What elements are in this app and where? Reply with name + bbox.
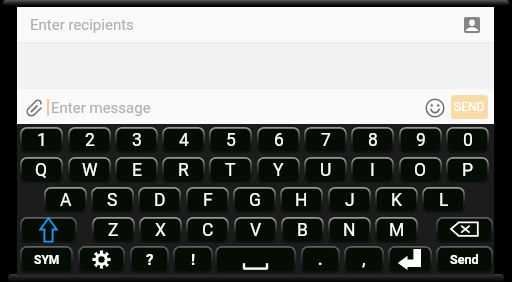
staticText: O	[414, 160, 427, 181]
button[interactable]: K	[375, 187, 418, 213]
staticText: D	[154, 190, 166, 211]
button[interactable]: P	[446, 157, 489, 183]
button[interactable]: Y	[257, 157, 300, 183]
staticText: X	[155, 220, 166, 241]
staticText: 4	[179, 130, 189, 151]
staticText: U	[320, 160, 332, 181]
staticText: 5	[226, 130, 236, 151]
button[interactable]: C	[186, 217, 229, 243]
button[interactable]: !	[173, 246, 213, 273]
button[interactable]: .	[301, 246, 340, 273]
button[interactable]: Q	[20, 157, 63, 183]
staticText: R	[178, 160, 189, 181]
button[interactable]: ,	[344, 246, 384, 273]
button[interactable]: Attach	[23, 98, 45, 120]
staticText: H	[295, 190, 308, 211]
staticText: B	[297, 220, 308, 241]
staticText: I	[370, 160, 375, 181]
button[interactable]: 9	[399, 127, 442, 153]
button[interactable]: T	[209, 157, 252, 183]
staticText: Send	[450, 252, 479, 267]
staticText: E	[132, 160, 142, 181]
button[interactable]: G	[233, 187, 276, 213]
button[interactable]: Space	[215, 246, 296, 273]
staticText: L	[439, 190, 449, 211]
staticText: Enter message	[51, 99, 151, 117]
button[interactable]: F	[186, 187, 229, 213]
button[interactable]: 3	[115, 127, 158, 153]
staticText: 8	[368, 130, 378, 151]
button[interactable]: 6	[257, 127, 300, 153]
staticText: 7	[321, 130, 331, 151]
staticText: K	[391, 190, 402, 211]
button[interactable]: 0	[446, 127, 489, 153]
staticText: SYM	[34, 253, 60, 267]
button[interactable]: 7	[304, 127, 347, 153]
staticText: P	[462, 160, 474, 181]
button[interactable]: Enter	[388, 246, 432, 273]
staticText: A	[60, 190, 72, 211]
button[interactable]: Z	[92, 217, 135, 243]
staticText: M	[389, 220, 405, 241]
staticText: V	[250, 220, 262, 241]
button[interactable]: Keyboard settings	[78, 246, 125, 273]
button[interactable]: R	[162, 157, 205, 183]
staticText: ?	[146, 251, 154, 269]
button[interactable]: 2	[68, 127, 111, 153]
staticText: J	[345, 190, 355, 211]
button[interactable]: SYM	[20, 246, 73, 273]
button[interactable]: M	[375, 217, 418, 243]
button[interactable]: 8	[351, 127, 394, 153]
staticText: G	[249, 190, 261, 211]
button[interactable]: N	[328, 217, 371, 243]
button[interactable]: Emoji	[425, 98, 445, 118]
button[interactable]: Send	[436, 246, 493, 273]
button[interactable]: D	[138, 187, 181, 213]
staticText: !	[191, 251, 196, 269]
button[interactable]: Backspace	[436, 217, 493, 243]
button[interactable]: L	[422, 187, 465, 213]
staticText: Q	[35, 160, 48, 181]
staticText: SEND	[454, 100, 485, 114]
button[interactable]: B	[281, 217, 324, 243]
button[interactable]: S	[91, 187, 134, 213]
staticText: Enter recipients	[30, 16, 134, 34]
button[interactable]: U	[304, 157, 347, 183]
button[interactable]: O	[399, 157, 442, 183]
staticText: 6	[274, 130, 284, 151]
staticText: 1	[37, 130, 47, 151]
staticText: F	[203, 190, 213, 211]
button[interactable]: E	[115, 157, 158, 183]
staticText: Z	[108, 220, 119, 241]
button[interactable]: I	[351, 157, 394, 183]
staticText: C	[202, 220, 214, 241]
button[interactable]: Choose contact	[461, 14, 482, 35]
staticText: 9	[416, 130, 426, 151]
staticText: 3	[132, 130, 142, 151]
staticText: .	[318, 251, 323, 269]
button[interactable]: 4	[162, 127, 205, 153]
staticText: W	[82, 160, 98, 181]
button[interactable]: J	[328, 187, 371, 213]
button[interactable]: 1	[20, 127, 63, 153]
staticText: N	[343, 220, 356, 241]
staticText: ,	[362, 251, 366, 269]
button[interactable]: Shift	[20, 217, 77, 243]
button[interactable]: ?	[130, 246, 169, 273]
button[interactable]: W	[68, 157, 111, 183]
button[interactable]: Enter recipients	[17, 7, 457, 42]
staticText: 0	[463, 130, 473, 151]
staticText: Y	[273, 160, 284, 181]
staticText: T	[225, 160, 236, 181]
button[interactable]: V	[234, 217, 277, 243]
button[interactable]: H	[280, 187, 323, 213]
staticText: 2	[85, 130, 95, 151]
button[interactable]: X	[139, 217, 182, 243]
button[interactable]: 5	[209, 127, 252, 153]
button[interactable]: SEND	[451, 95, 488, 119]
button[interactable]: A	[44, 187, 87, 213]
staticText: S	[107, 190, 118, 211]
